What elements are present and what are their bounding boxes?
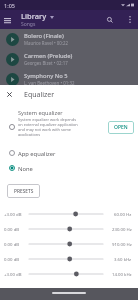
staticText: Library <box>21 11 47 21</box>
button[interactable]: App equalizer <box>0 146 138 159</box>
staticText: +3.00 dB <box>4 271 22 277</box>
button[interactable]: OPEN <box>108 121 134 134</box>
staticText: 3.60 kHz <box>114 256 132 262</box>
staticText: Georges Bizet • 02:17 <box>24 60 68 66</box>
staticText: and may not work with some <box>18 127 72 132</box>
staticText: 910.00 Hz <box>112 241 132 247</box>
staticText: Symphony No 5 <box>24 72 68 80</box>
staticText: 0.00 dB <box>4 226 20 232</box>
staticText: L. van Beethoven • 01:32 <box>24 80 75 86</box>
button[interactable]: Search <box>103 13 116 26</box>
button[interactable]: Bolero (Finale) <box>0 29 138 49</box>
button[interactable]: Menu <box>0 13 14 27</box>
button[interactable]: Carmen (Prelude) <box>0 49 138 69</box>
staticText: Bolero (Finale) <box>24 32 64 40</box>
staticText: PRESETS <box>14 188 34 195</box>
staticText: OPEN <box>114 124 128 131</box>
button[interactable] <box>28 223 104 235</box>
staticText: None <box>18 165 33 173</box>
staticText: on external equalizer application <box>18 122 78 127</box>
staticText: +3.00 dB <box>4 211 22 217</box>
staticText: applications <box>18 132 41 136</box>
staticText: System equalizer <box>18 109 63 117</box>
button[interactable] <box>28 238 104 250</box>
button[interactable]: PRESETS <box>7 184 40 198</box>
staticText: 60.00 Hz <box>114 211 132 217</box>
button[interactable]: None <box>0 161 138 174</box>
staticText: 230.00 Hz <box>112 226 132 232</box>
staticText: Maurice Ravel • 00:22 <box>24 40 69 46</box>
staticText: 1:05 <box>4 2 15 9</box>
button[interactable]: System equalizer <box>0 105 138 132</box>
button[interactable] <box>28 253 104 265</box>
staticText: 0.00 dB <box>4 241 20 247</box>
staticText: Songs <box>21 21 36 28</box>
staticText: Carmen (Prelude) <box>24 52 73 60</box>
button[interactable] <box>28 268 104 280</box>
button[interactable]: Close <box>2 87 17 102</box>
staticText: Equalizer <box>24 90 55 100</box>
button[interactable] <box>28 208 104 220</box>
button[interactable]: More options <box>123 13 136 26</box>
staticText: System equalizer work depends <box>18 117 76 122</box>
staticText: 0.00 dB <box>4 256 20 262</box>
button[interactable]: Symphony No 5 <box>0 69 138 89</box>
staticText: 14.00 kHz <box>112 271 132 277</box>
staticText: App equalizer <box>18 150 56 158</box>
